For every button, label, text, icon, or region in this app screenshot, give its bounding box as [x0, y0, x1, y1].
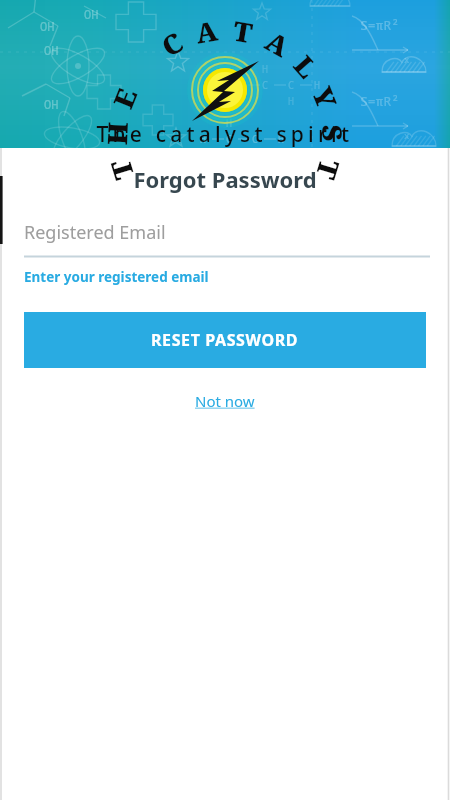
button[interactable]: RESET PASSWORD: [24, 312, 426, 368]
staticText: Not now: [195, 391, 255, 411]
staticText: Forgot Password: [133, 164, 317, 194]
button[interactable]: Registered Email: [0, 210, 450, 255]
staticText: Registered Email: [24, 220, 166, 245]
staticText: Enter your registered email: [24, 268, 209, 286]
staticText: RESET PASSWORD: [151, 329, 299, 351]
button[interactable]: Not now: [187, 387, 263, 415]
